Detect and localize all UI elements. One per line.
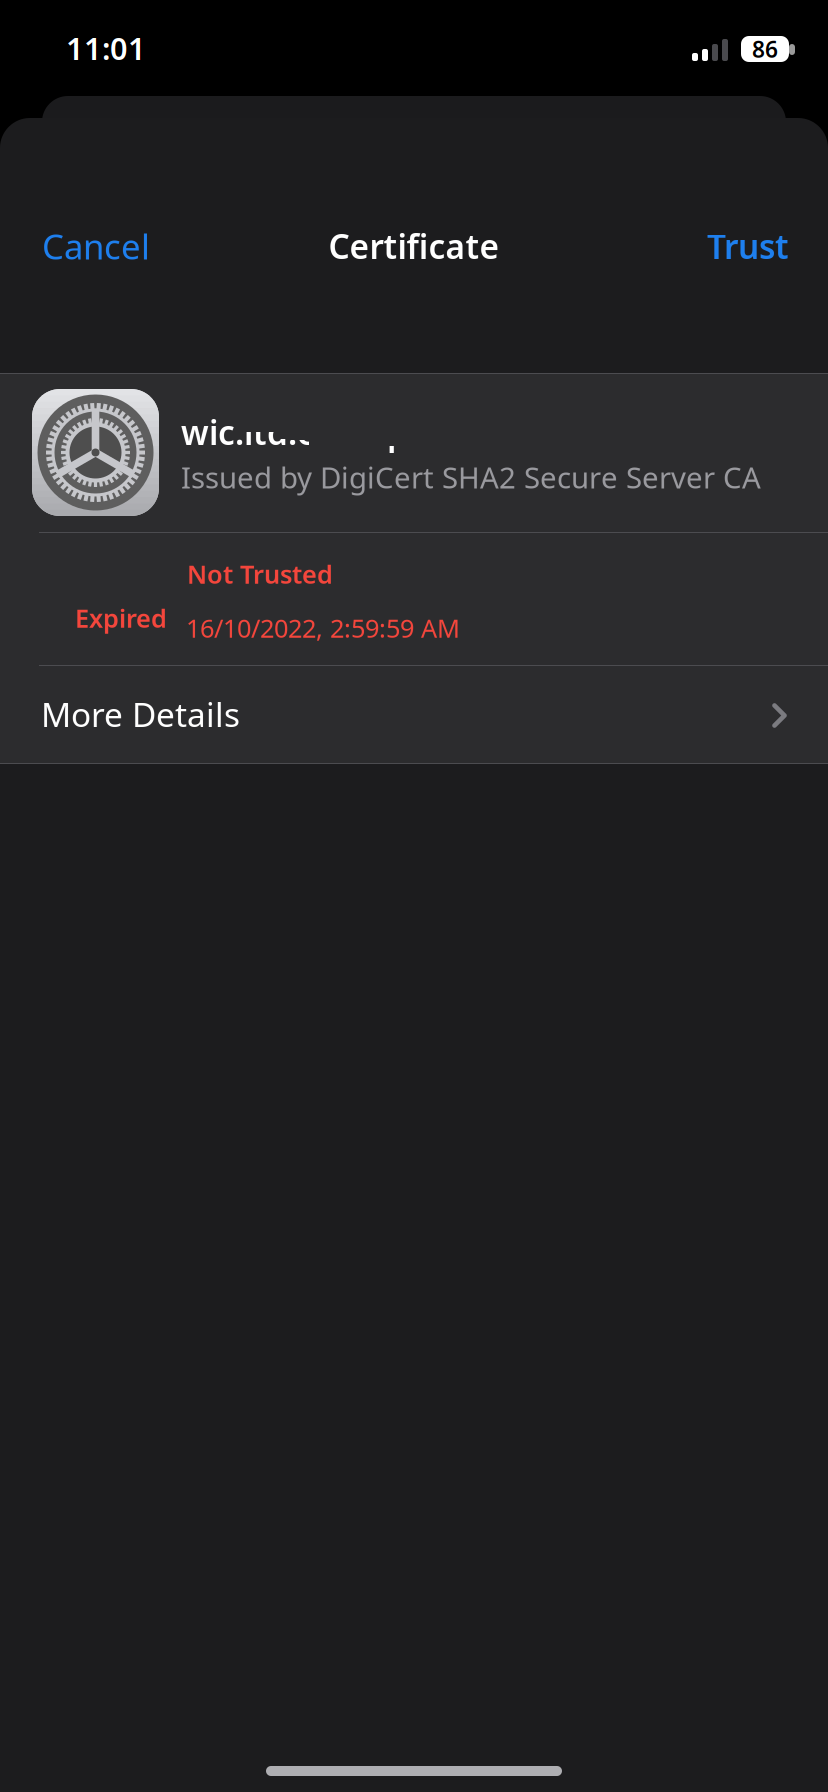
staticText: wic.itd.example.com	[181, 410, 516, 454]
staticText: Cancel	[42, 223, 150, 269]
staticText: 86	[752, 34, 778, 64]
staticText: Expired	[75, 601, 167, 635]
button[interactable]: Cancel	[34, 208, 180, 284]
staticText: Not Trusted	[187, 557, 333, 591]
button[interactable]: More Details	[0, 666, 828, 763]
staticText: 16/10/2022, 2:59:59 AM	[186, 611, 460, 645]
staticText: Trust	[707, 224, 789, 268]
button[interactable]: Trust	[681, 208, 797, 284]
staticText: Certificate	[328, 224, 499, 268]
staticText: 11:01	[66, 28, 146, 68]
staticText: Issued by DigiCert SHA2 Secure Server CA	[181, 457, 761, 496]
staticText: More Details	[41, 692, 240, 736]
